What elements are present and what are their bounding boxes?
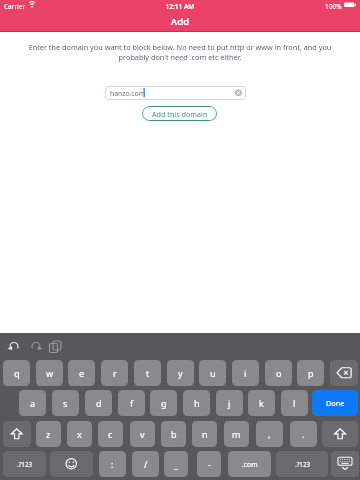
button[interactable]: d bbox=[85, 390, 112, 416]
staticText: Done bbox=[326, 398, 345, 408]
staticText: u bbox=[210, 367, 216, 379]
staticText: : bbox=[111, 458, 114, 470]
button[interactable]: g bbox=[150, 390, 177, 416]
button[interactable]: q bbox=[3, 360, 30, 386]
staticText: 12:11 AM bbox=[0, 2, 360, 11]
button[interactable] bbox=[331, 451, 359, 477]
button[interactable]: : bbox=[99, 451, 126, 477]
button[interactable]: f bbox=[118, 390, 145, 416]
button[interactable]: n bbox=[192, 421, 217, 447]
button[interactable]: o bbox=[265, 360, 292, 386]
button[interactable]: i bbox=[232, 360, 259, 386]
staticText: t bbox=[146, 367, 150, 379]
button[interactable]: _ bbox=[164, 451, 188, 477]
staticText: h bbox=[194, 397, 200, 409]
staticText: Carrier bbox=[4, 2, 26, 11]
button[interactable]: k bbox=[248, 390, 275, 416]
staticText: i bbox=[244, 367, 247, 379]
staticText: m bbox=[232, 428, 241, 440]
button[interactable]: Add this domain bbox=[142, 106, 217, 121]
staticText: e bbox=[79, 367, 85, 379]
button[interactable]: u bbox=[199, 360, 226, 386]
button[interactable]: z bbox=[36, 421, 61, 447]
button[interactable]: r bbox=[101, 360, 128, 386]
button[interactable]: t bbox=[134, 360, 161, 386]
staticText: hanzo.com bbox=[110, 89, 146, 98]
button[interactable]: c bbox=[98, 421, 123, 447]
staticText: / bbox=[144, 458, 148, 470]
staticText: d bbox=[96, 397, 102, 409]
button[interactable]: y bbox=[167, 360, 194, 386]
button[interactable]: x bbox=[67, 421, 92, 447]
staticText: o bbox=[276, 367, 282, 379]
staticText: n bbox=[202, 428, 208, 440]
button[interactable]: p bbox=[297, 360, 324, 386]
staticText: Enter the domain you want to block below… bbox=[0, 42, 360, 62]
staticText: s bbox=[63, 397, 68, 409]
button[interactable]: s bbox=[52, 390, 79, 416]
button[interactable] bbox=[3, 421, 31, 447]
button[interactable]: . bbox=[290, 421, 317, 447]
staticText: v bbox=[140, 428, 145, 440]
staticText: Add bbox=[0, 15, 360, 28]
button[interactable]: .?123 bbox=[276, 451, 328, 477]
staticText: j bbox=[228, 397, 231, 409]
button[interactable]: e bbox=[68, 360, 95, 386]
button[interactable]: j bbox=[216, 390, 243, 416]
staticText: .com bbox=[242, 460, 258, 469]
staticText: b bbox=[171, 428, 177, 440]
button[interactable]: - bbox=[197, 451, 221, 477]
staticText: Add this domain bbox=[152, 109, 208, 119]
button[interactable]: w bbox=[36, 360, 63, 386]
staticText: w bbox=[46, 367, 54, 379]
staticText: l bbox=[293, 397, 296, 409]
staticText: c bbox=[108, 428, 113, 440]
staticText: - bbox=[208, 458, 211, 470]
staticText: g bbox=[161, 397, 167, 409]
staticText: _ bbox=[174, 458, 178, 470]
button[interactable]: .?123 bbox=[3, 451, 46, 477]
button[interactable]: hanzo.com bbox=[105, 86, 246, 100]
button[interactable]: , bbox=[256, 421, 283, 447]
staticText: . bbox=[302, 428, 305, 440]
staticText: q bbox=[14, 367, 20, 379]
staticText: 100% bbox=[325, 2, 342, 11]
staticText: z bbox=[46, 428, 51, 440]
staticText: a bbox=[30, 397, 36, 409]
button[interactable]: / bbox=[132, 451, 159, 477]
button[interactable]: b bbox=[161, 421, 186, 447]
button[interactable]: Done bbox=[312, 390, 358, 416]
staticText: p bbox=[308, 367, 314, 379]
staticText: y bbox=[178, 367, 183, 379]
button[interactable] bbox=[50, 451, 93, 477]
button[interactable]: m bbox=[224, 421, 249, 447]
button[interactable] bbox=[330, 360, 358, 386]
button[interactable] bbox=[322, 421, 358, 447]
staticText: .?123 bbox=[295, 460, 310, 468]
button[interactable]: h bbox=[183, 390, 210, 416]
button[interactable]: v bbox=[130, 421, 155, 447]
staticText: , bbox=[268, 428, 271, 440]
staticText: r bbox=[113, 367, 117, 379]
staticText: k bbox=[259, 397, 264, 409]
button[interactable]: l bbox=[281, 390, 308, 416]
button[interactable]: a bbox=[19, 390, 46, 416]
staticText: .?123 bbox=[17, 460, 32, 468]
staticText: f bbox=[130, 397, 134, 409]
staticText: x bbox=[77, 428, 82, 440]
button[interactable]: .com bbox=[228, 451, 271, 477]
